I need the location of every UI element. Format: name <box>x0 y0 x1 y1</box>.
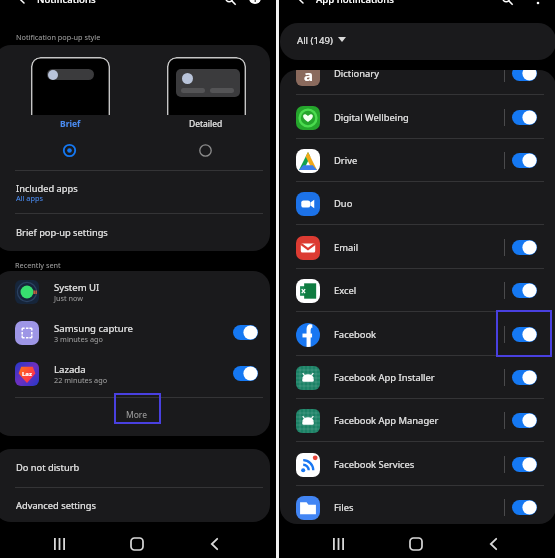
button[interactable]: Toggle notification <box>233 366 258 381</box>
button[interactable]: All (149) <box>280 23 555 60</box>
staticText: Digital Wellbeing <box>334 111 409 124</box>
button[interactable]: Detailed <box>178 118 234 148</box>
staticText: Notifications <box>37 0 96 6</box>
staticText: Included apps <box>16 182 78 195</box>
button[interactable]: Search <box>221 0 239 8</box>
button[interactable]: Back <box>479 530 507 558</box>
staticText: Duo <box>334 197 353 210</box>
staticText: Lazada <box>54 363 86 376</box>
button[interactable]: Files <box>280 486 555 524</box>
staticText: Laz <box>22 370 32 378</box>
staticText: Recently sent <box>15 260 61 270</box>
staticText: Advanced settings <box>16 499 96 512</box>
staticText: Excel <box>334 284 357 297</box>
staticText: Detailed <box>189 118 223 130</box>
button[interactable]: Facebook App Manager <box>280 399 555 442</box>
button[interactable]: Info <box>249 0 261 4</box>
button[interactable]: Facebook App Installer <box>280 356 555 399</box>
button[interactable]: Toggle notification <box>233 325 258 340</box>
button[interactable]: Navigate up <box>290 0 308 6</box>
button[interactable]: Duo <box>280 182 555 225</box>
button[interactable]: Excel <box>280 269 555 312</box>
button[interactable]: Recent apps <box>45 530 73 558</box>
button[interactable]: Email <box>280 226 555 269</box>
button[interactable]: Samsung capture <box>0 312 272 353</box>
button[interactable]: More options <box>530 0 546 6</box>
button[interactable]: Home <box>123 530 151 558</box>
button[interactable]: Brief <box>42 118 98 148</box>
staticText: System UI <box>54 281 100 294</box>
button[interactable]: Facebook Services <box>280 443 555 486</box>
button[interactable]: a <box>280 70 555 95</box>
button[interactable] <box>167 57 246 115</box>
button[interactable]: Toggle notification <box>512 70 537 81</box>
button[interactable]: Toggle notification <box>512 457 537 472</box>
staticText: Dictionary <box>334 70 380 80</box>
staticText: Files <box>334 501 354 514</box>
staticText: Brief pop-up settings <box>16 226 108 239</box>
staticText: 3 minutes ago <box>54 334 103 344</box>
button[interactable]: Toggle notification <box>512 413 537 428</box>
staticText: Just now <box>54 293 84 303</box>
staticText: More <box>126 409 147 421</box>
button[interactable]: Toggle notification <box>512 500 537 515</box>
button[interactable]: Toggle notification <box>512 327 537 342</box>
staticText: Facebook Services <box>334 458 415 471</box>
button[interactable]: Navigate up <box>11 0 29 6</box>
staticText: Facebook App Manager <box>334 414 439 427</box>
staticText: i <box>254 0 257 4</box>
button[interactable]: Brief pop-up settings <box>0 214 272 251</box>
button[interactable]: Back <box>200 530 228 558</box>
staticText: Do not disturb <box>16 461 80 474</box>
button[interactable]: Toggle notification <box>512 153 537 168</box>
staticText: App notifications <box>316 0 394 6</box>
staticText: Notification pop-up style <box>16 32 101 42</box>
button[interactable]: Toggle notification <box>512 370 537 385</box>
button[interactable]: More <box>0 398 272 436</box>
button[interactable]: Search <box>498 0 516 8</box>
staticText: All (149) <box>297 34 333 47</box>
staticText: Drive <box>334 154 358 167</box>
staticText: Email <box>334 241 359 254</box>
button[interactable]: Advanced settings <box>0 488 272 522</box>
button[interactable]: Toggle notification <box>512 283 537 298</box>
staticText: Samsung capture <box>54 322 133 335</box>
button[interactable]: Laz <box>0 353 272 394</box>
staticText: Facebook App Installer <box>334 371 435 384</box>
button[interactable]: Toggle notification <box>512 240 537 255</box>
staticText: Brief <box>60 118 81 130</box>
staticText: All apps <box>16 193 43 203</box>
button[interactable]: Facebook <box>280 313 555 356</box>
button[interactable]: Digital Wellbeing <box>280 96 555 139</box>
staticText: 22 minutes ago <box>54 375 108 385</box>
staticText: Facebook <box>334 328 377 341</box>
button[interactable]: Home <box>402 530 430 558</box>
button[interactable]: Do not disturb <box>0 449 272 487</box>
button[interactable]: System UI <box>0 271 272 312</box>
button[interactable] <box>31 57 110 115</box>
button[interactable]: Included apps <box>0 171 272 213</box>
button[interactable]: Toggle notification <box>512 110 537 125</box>
staticText: a <box>304 70 313 85</box>
button[interactable]: Drive <box>280 139 555 182</box>
button[interactable]: Recent apps <box>324 530 352 558</box>
